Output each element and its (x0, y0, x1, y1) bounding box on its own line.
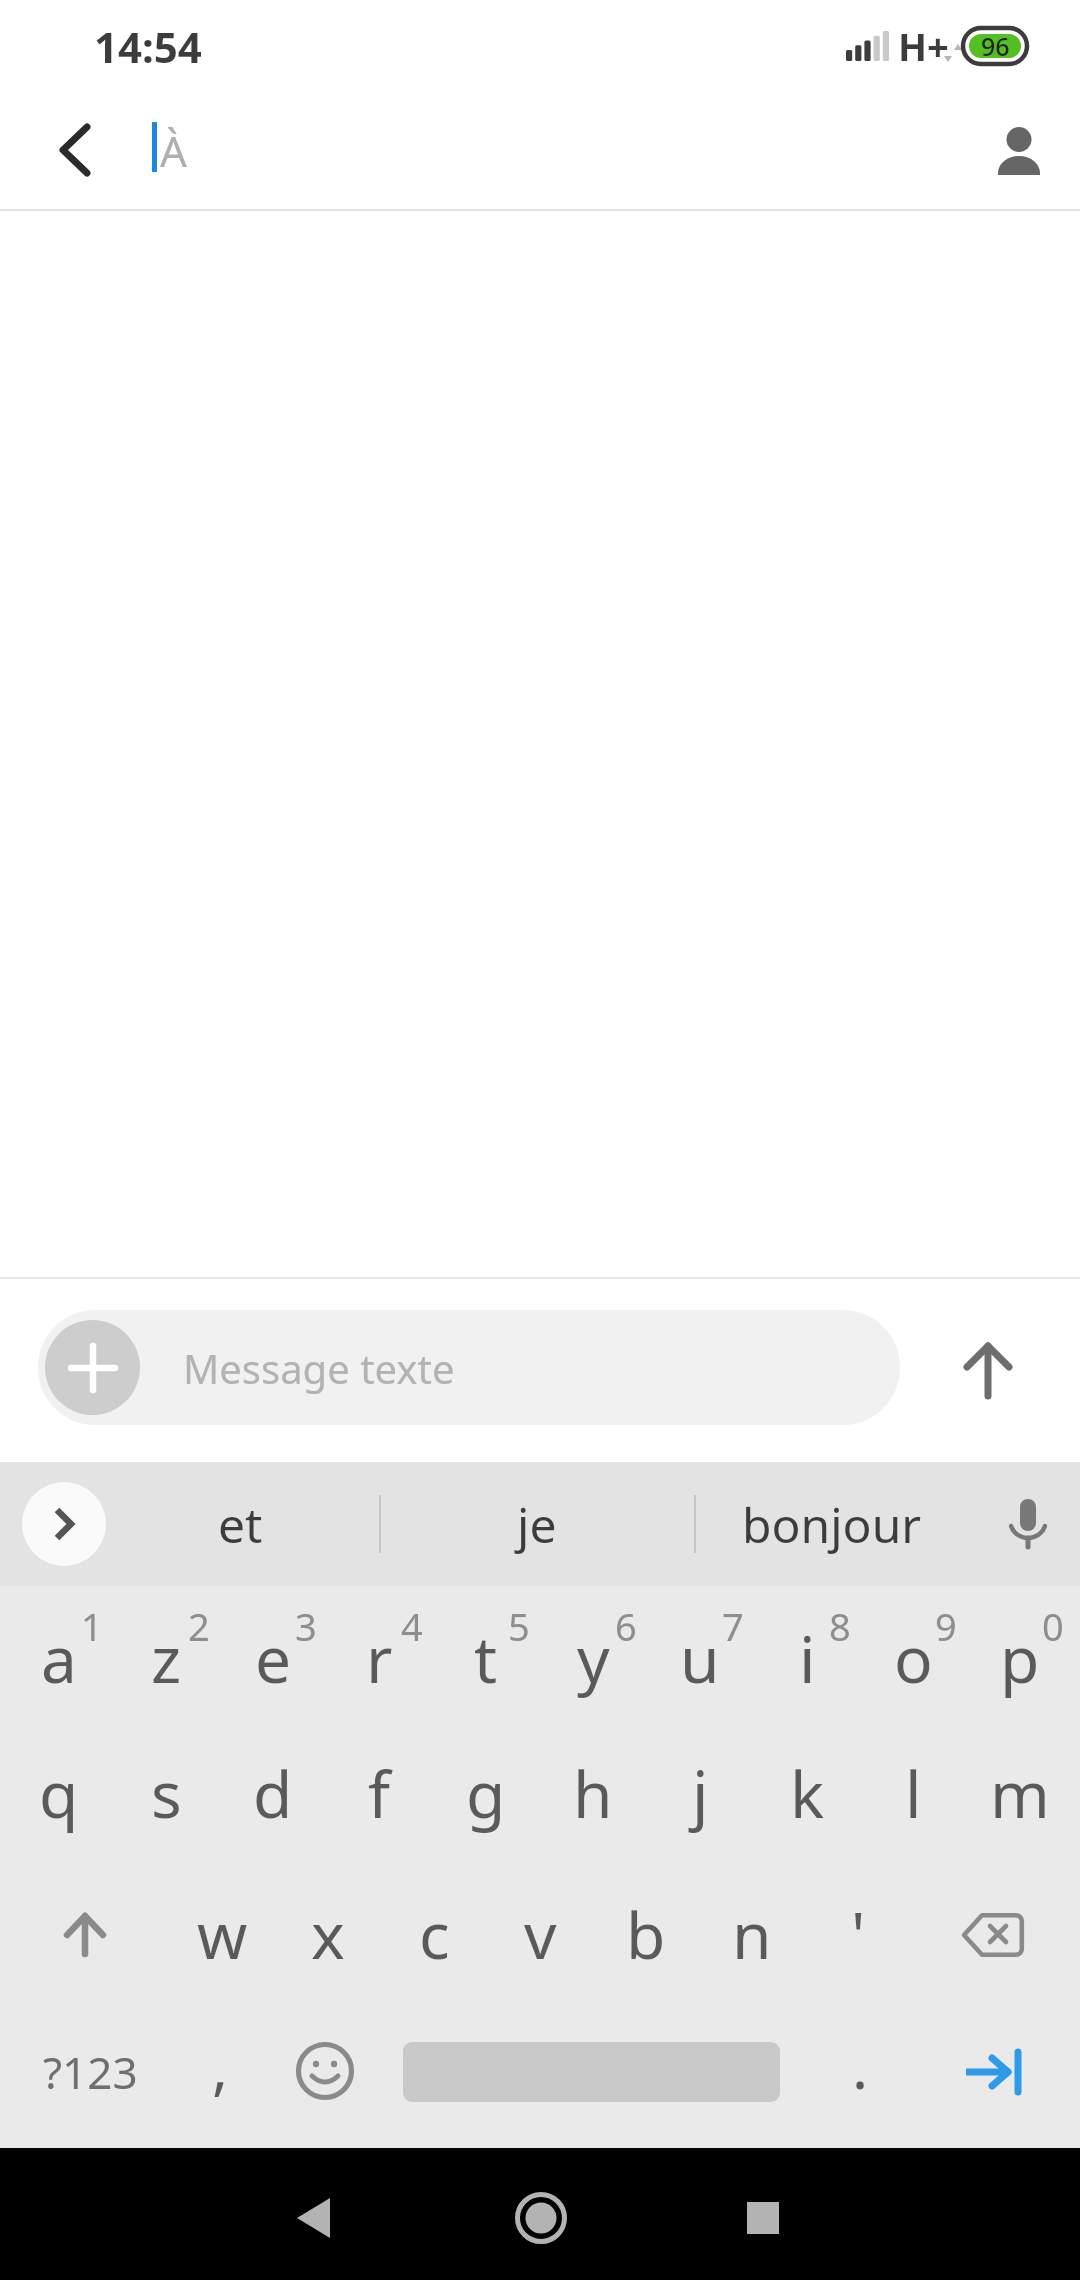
button[interactable]: i (754, 1598, 860, 1718)
button[interactable]: 9 (893, 1566, 999, 1686)
button[interactable]: f (326, 1733, 432, 1853)
button[interactable]: d (220, 1733, 326, 1853)
staticText: u (680, 1615, 720, 1702)
button[interactable]: . (807, 2006, 913, 2126)
button[interactable]: k (754, 1733, 860, 1853)
button[interactable]: a (6, 1598, 112, 1718)
staticText: 7 (722, 1600, 744, 1652)
staticText: p (1000, 1615, 1040, 1702)
staticText: s (151, 1750, 182, 1837)
button[interactable]: y (540, 1598, 646, 1718)
button[interactable]: et (130, 1474, 350, 1574)
button[interactable]: z (113, 1598, 219, 1718)
button[interactable]: À (160, 90, 187, 210)
button[interactable]: h (540, 1733, 646, 1853)
button[interactable]: b (593, 1874, 699, 1994)
button[interactable]: ?123 (30, 2036, 150, 2108)
button[interactable]: q (6, 1733, 112, 1853)
staticText: c (419, 1891, 450, 1978)
staticText: d (253, 1750, 293, 1837)
button[interactable]: m (967, 1733, 1073, 1853)
staticText: k (790, 1750, 825, 1837)
staticText: t (474, 1615, 498, 1702)
button[interactable]: ' (805, 1874, 911, 1994)
staticText: r (366, 1615, 393, 1702)
button[interactable]: r (326, 1598, 432, 1718)
staticText: ?123 (43, 2042, 138, 2102)
button[interactable] (728, 2183, 798, 2253)
staticText: b (626, 1891, 666, 1978)
button[interactable] (45, 1320, 140, 1415)
staticText: À (160, 122, 187, 179)
staticText: 8 (829, 1600, 851, 1652)
button[interactable]: 6 (573, 1566, 679, 1686)
staticText: . (852, 2025, 869, 2107)
button[interactable]: w (169, 1874, 275, 1994)
button[interactable]: s (113, 1733, 219, 1853)
staticText: 4 (401, 1600, 423, 1652)
button[interactable]: 5 (466, 1566, 572, 1686)
button[interactable]: v (487, 1874, 593, 1994)
staticText: 2 (188, 1600, 210, 1652)
staticText: je (517, 1492, 557, 1557)
staticText: 14:54 (94, 18, 202, 75)
staticText: l (905, 1750, 922, 1837)
staticText: e (255, 1615, 292, 1702)
button[interactable] (948, 1899, 1038, 1971)
button[interactable] (952, 1335, 1024, 1407)
staticText: 0 (1042, 1600, 1064, 1652)
staticText: 3 (295, 1600, 317, 1652)
staticText: v (524, 1891, 557, 1978)
staticText: 1 (81, 1600, 103, 1652)
staticText: 5 (508, 1600, 530, 1652)
button[interactable] (287, 2033, 363, 2109)
button[interactable]: t (433, 1598, 539, 1718)
staticText: m (990, 1750, 1050, 1837)
button[interactable]: , (167, 2006, 273, 2126)
staticText: x (311, 1891, 345, 1978)
button[interactable]: n (699, 1874, 805, 1994)
button[interactable]: 8 (787, 1566, 893, 1686)
button[interactable] (278, 2183, 348, 2253)
staticText: et (218, 1492, 263, 1557)
button[interactable] (984, 115, 1054, 185)
button[interactable]: l (860, 1733, 966, 1853)
staticText: Message texte (183, 1341, 455, 1395)
button[interactable]: je (427, 1474, 647, 1574)
staticText: , (212, 2025, 229, 2107)
button[interactable]: e (220, 1598, 326, 1718)
button[interactable]: 7 (680, 1566, 786, 1686)
button[interactable]: o (860, 1598, 966, 1718)
button[interactable] (22, 1482, 106, 1566)
staticText: j (692, 1750, 709, 1837)
button[interactable]: c (381, 1874, 487, 1994)
button[interactable] (945, 2037, 1040, 2107)
button[interactable]: Message texte (38, 1310, 900, 1425)
button[interactable]: 4 (359, 1566, 465, 1686)
staticText: ' (851, 1891, 866, 1978)
button[interactable]: u (647, 1598, 753, 1718)
button[interactable]: 3 (253, 1566, 359, 1686)
button[interactable]: x (275, 1874, 381, 1994)
staticText: 6 (615, 1600, 637, 1652)
button[interactable]: 1 (39, 1566, 145, 1686)
button[interactable] (506, 2183, 576, 2253)
staticText: bonjour (742, 1492, 922, 1557)
staticText: o (894, 1615, 933, 1702)
staticText: a (41, 1615, 77, 1702)
button[interactable] (45, 1899, 125, 1971)
button[interactable]: 2 (146, 1566, 252, 1686)
staticText: h (573, 1750, 613, 1837)
staticText: z (151, 1615, 182, 1702)
button[interactable] (988, 1484, 1068, 1564)
button[interactable] (40, 115, 110, 185)
button[interactable]: p (967, 1598, 1073, 1718)
staticText: H+ (898, 20, 949, 72)
staticText: g (466, 1750, 506, 1837)
button[interactable]: 0 (1000, 1566, 1080, 1686)
staticText: q (39, 1750, 79, 1837)
button[interactable]: bonjour (722, 1474, 942, 1574)
button[interactable]: j (647, 1733, 753, 1853)
button[interactable]: g (433, 1733, 539, 1853)
